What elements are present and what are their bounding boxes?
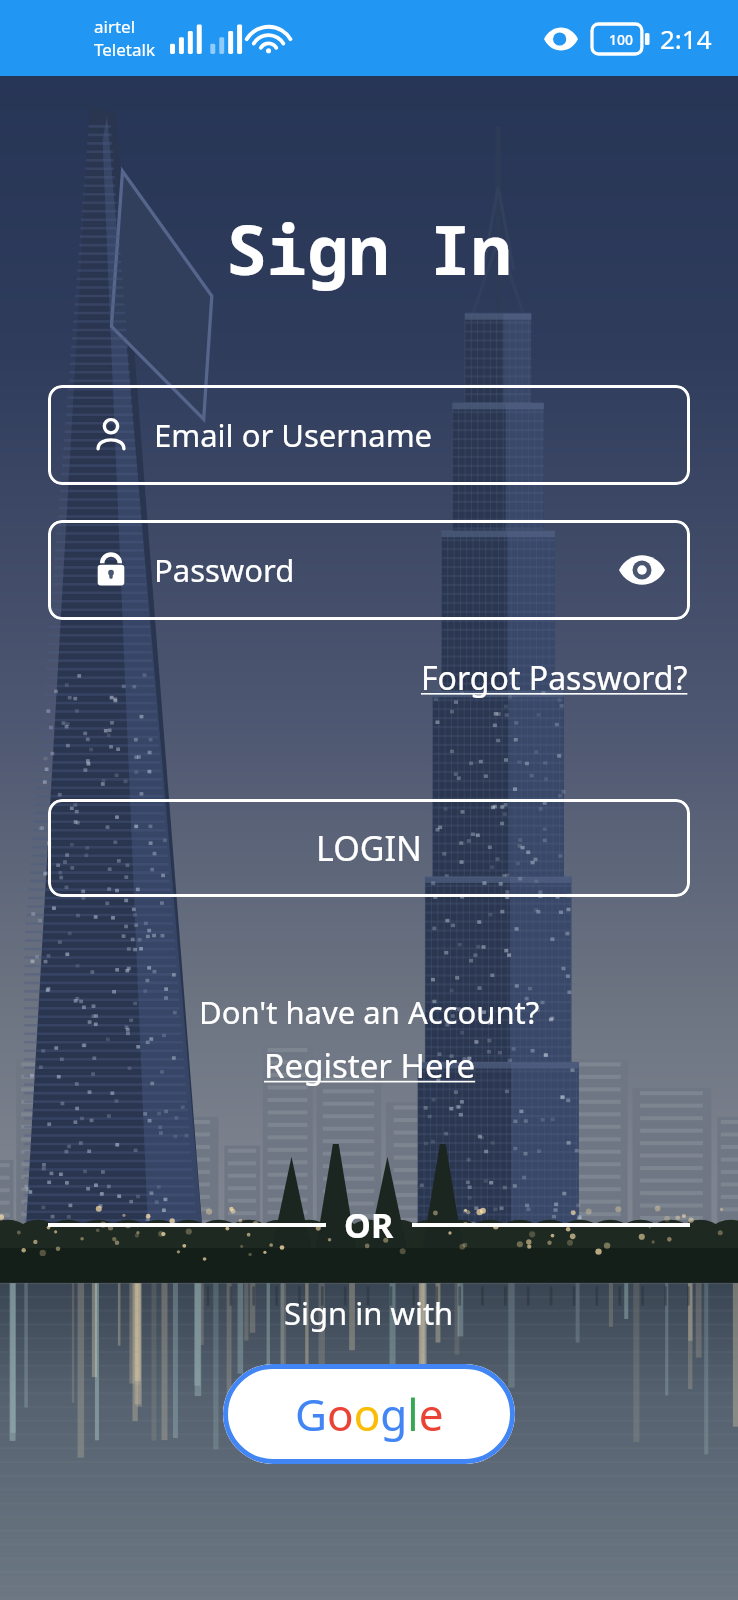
staticText: 100 <box>609 30 634 49</box>
staticText: 2:14 <box>660 21 712 56</box>
staticText: airtel <box>94 15 136 38</box>
staticText: LOGIN <box>316 825 422 871</box>
staticText: Sign In <box>226 202 512 295</box>
button[interactable]: Sign in with Google <box>223 1364 515 1464</box>
button[interactable]: Password <box>48 520 690 620</box>
staticText: OR <box>344 1202 394 1248</box>
button[interactable]: Forgot Password? <box>417 652 692 704</box>
button[interactable]: Register Here <box>258 1041 482 1090</box>
staticText: Register Here <box>264 1043 476 1088</box>
staticText: Sign in with <box>284 1292 454 1334</box>
staticText: Password <box>154 549 295 591</box>
staticText: Google <box>295 1384 444 1444</box>
button[interactable]: Email or Username <box>48 385 690 485</box>
button[interactable]: Show password <box>606 534 678 606</box>
staticText: Don't have an Account? <box>199 991 540 1033</box>
staticText: Forgot Password? <box>421 656 688 700</box>
staticText: Teletalk <box>94 38 155 61</box>
button[interactable]: LOGIN <box>48 799 690 897</box>
staticText: Email or Username <box>154 414 433 456</box>
